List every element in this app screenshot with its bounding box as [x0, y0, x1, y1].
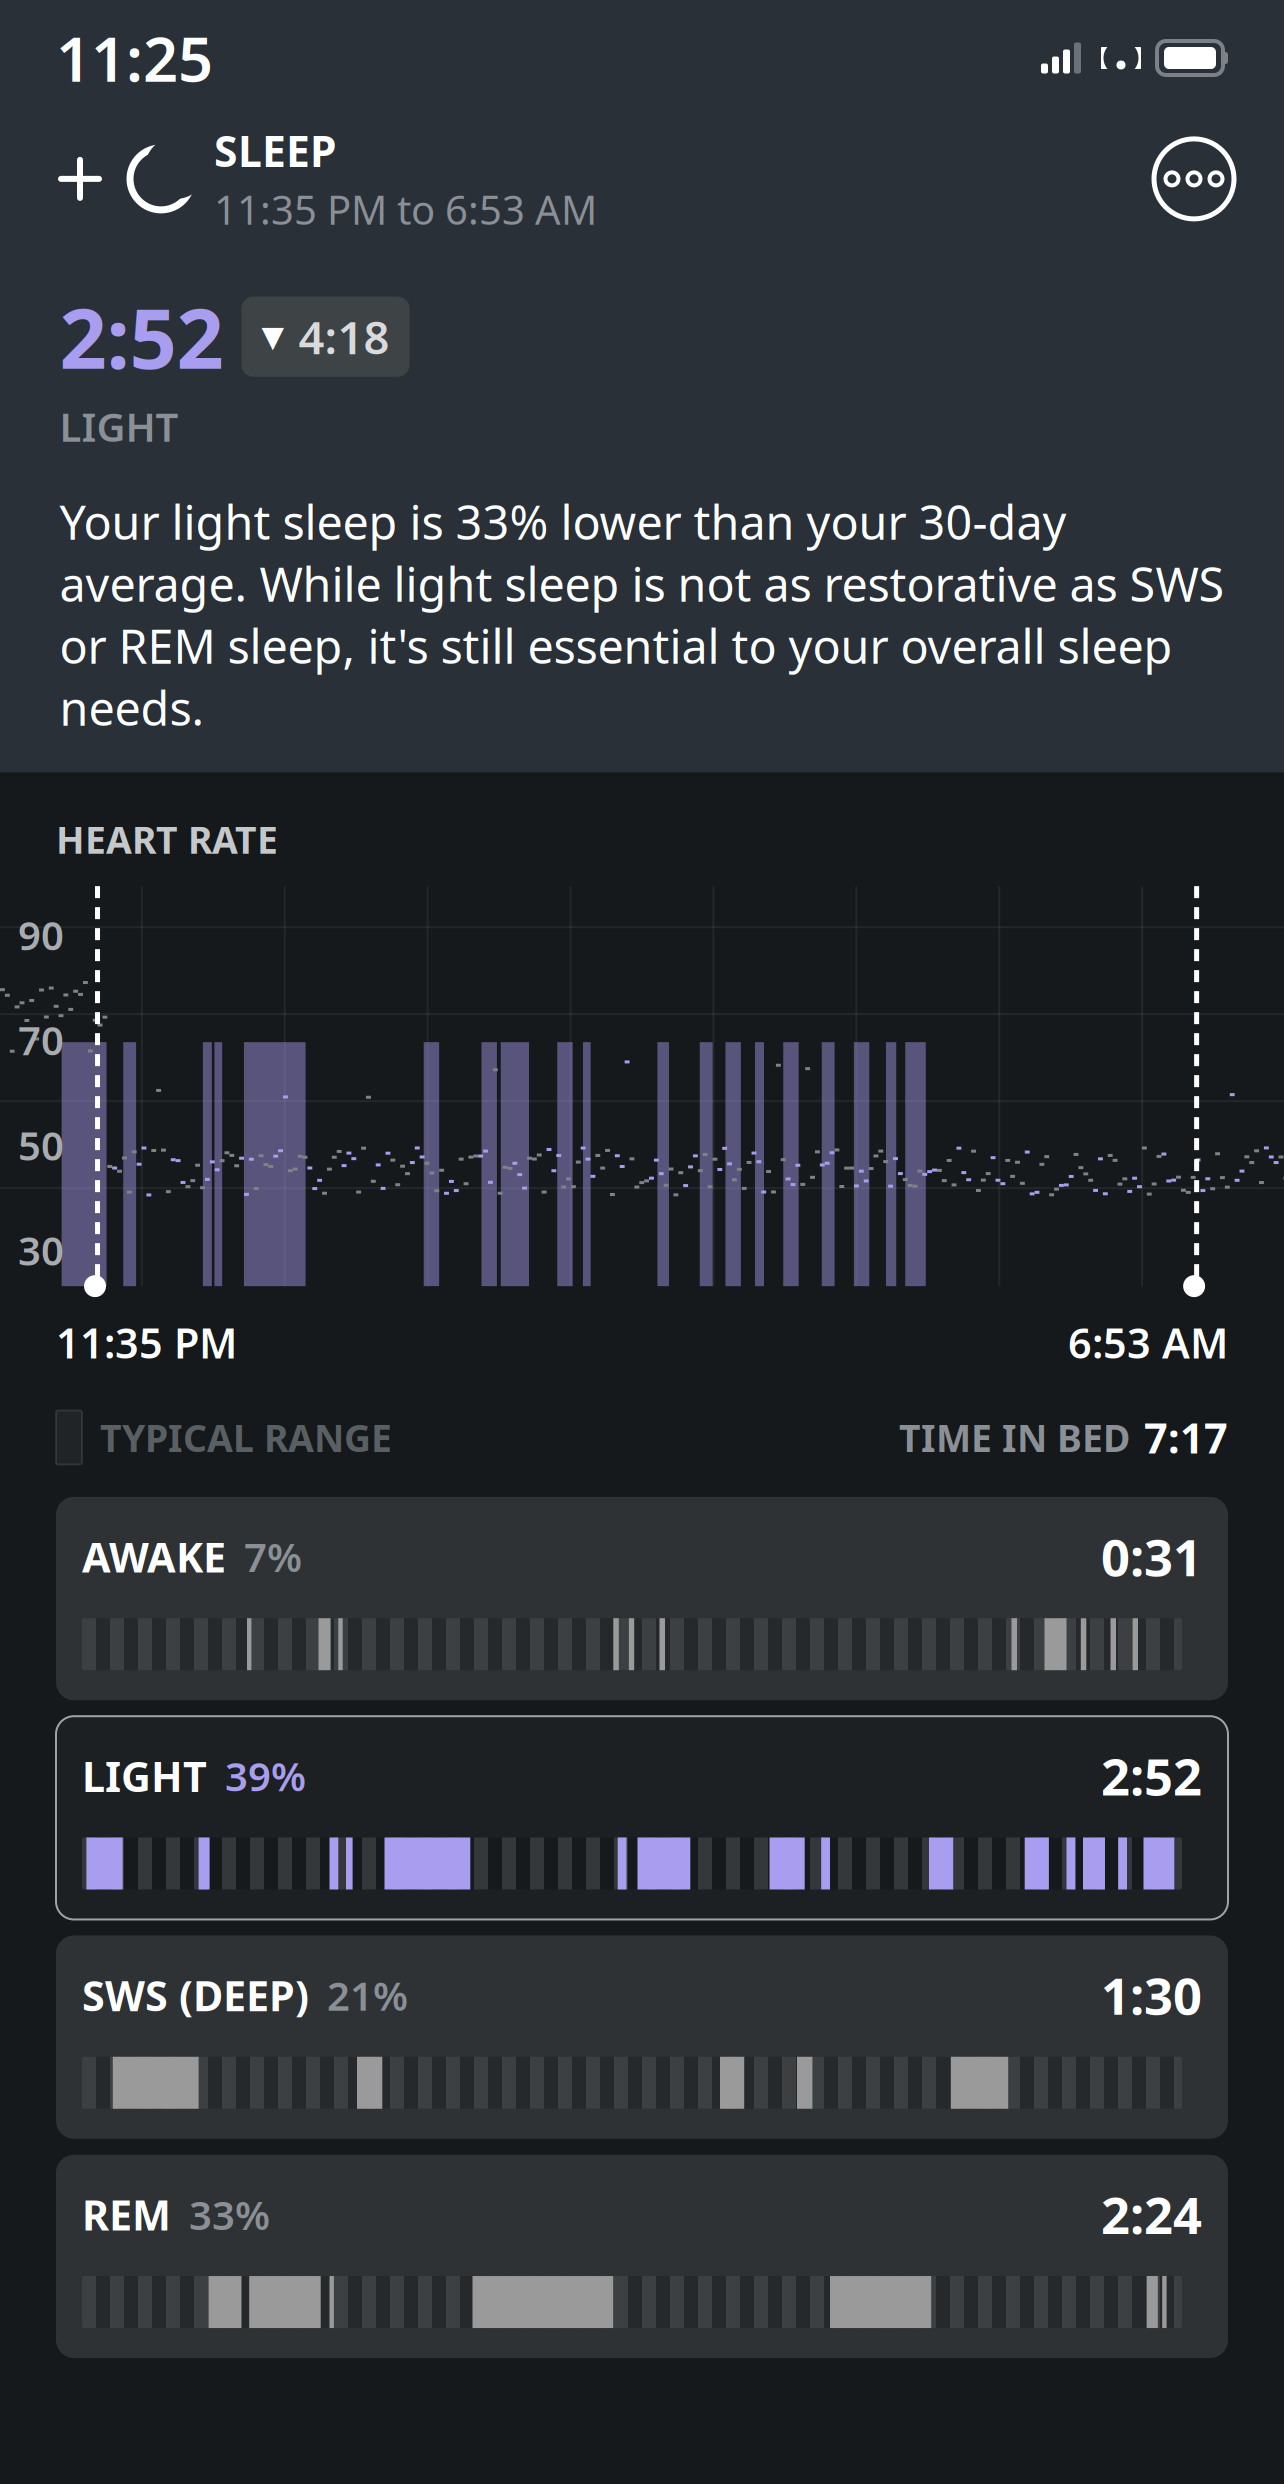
staticText: REM: [82, 2187, 171, 2242]
button[interactable]: SWS (DEEP): [56, 1935, 1228, 2139]
button[interactable]: Close: [44, 143, 116, 215]
staticText: 33%: [189, 2188, 270, 2241]
button[interactable]: More options: [1148, 133, 1240, 225]
staticText: 7%: [244, 1530, 302, 1583]
staticText: 50: [18, 1118, 64, 1171]
staticText: 39%: [225, 1749, 306, 1802]
staticText: 90: [18, 908, 64, 961]
staticText: 4:18: [298, 307, 389, 367]
staticText: SLEEP: [214, 122, 336, 179]
staticText: SWS (DEEP): [82, 1968, 309, 2023]
staticText: 0:31: [1101, 1523, 1202, 1590]
staticText: ▼: [261, 320, 284, 353]
staticText: HEART RATE: [56, 815, 278, 864]
staticText: 1:30: [1101, 1961, 1202, 2029]
staticText: 30: [18, 1223, 64, 1277]
staticText: 70: [18, 1013, 64, 1066]
staticText: 2:24: [1101, 2181, 1202, 2248]
staticText: 21%: [327, 1969, 408, 2022]
staticText: 11:35 PM to 6:53 AM: [214, 183, 597, 236]
staticText: AWAKE: [82, 1529, 226, 1584]
button[interactable]: REM: [56, 2155, 1228, 2358]
button[interactable]: AWAKE: [56, 1497, 1228, 1700]
staticText: LIGHT: [82, 1748, 207, 1803]
staticText: 7:17: [1144, 1410, 1228, 1465]
staticText: LIGHT: [59, 400, 178, 453]
staticText: TYPICAL RANGE: [100, 1413, 392, 1462]
staticText: TIME IN BED: [899, 1413, 1130, 1462]
staticText: 2:52: [59, 282, 223, 392]
staticText: 11:25: [56, 17, 213, 99]
staticText: 11:35 PM: [56, 1315, 237, 1370]
staticText: 2:52: [1101, 1742, 1202, 1809]
staticText: Your light sleep is 33% lower than your …: [59, 491, 1224, 739]
staticText: 6:53 AM: [1068, 1315, 1228, 1370]
button[interactable]: LIGHT: [56, 1716, 1228, 1919]
